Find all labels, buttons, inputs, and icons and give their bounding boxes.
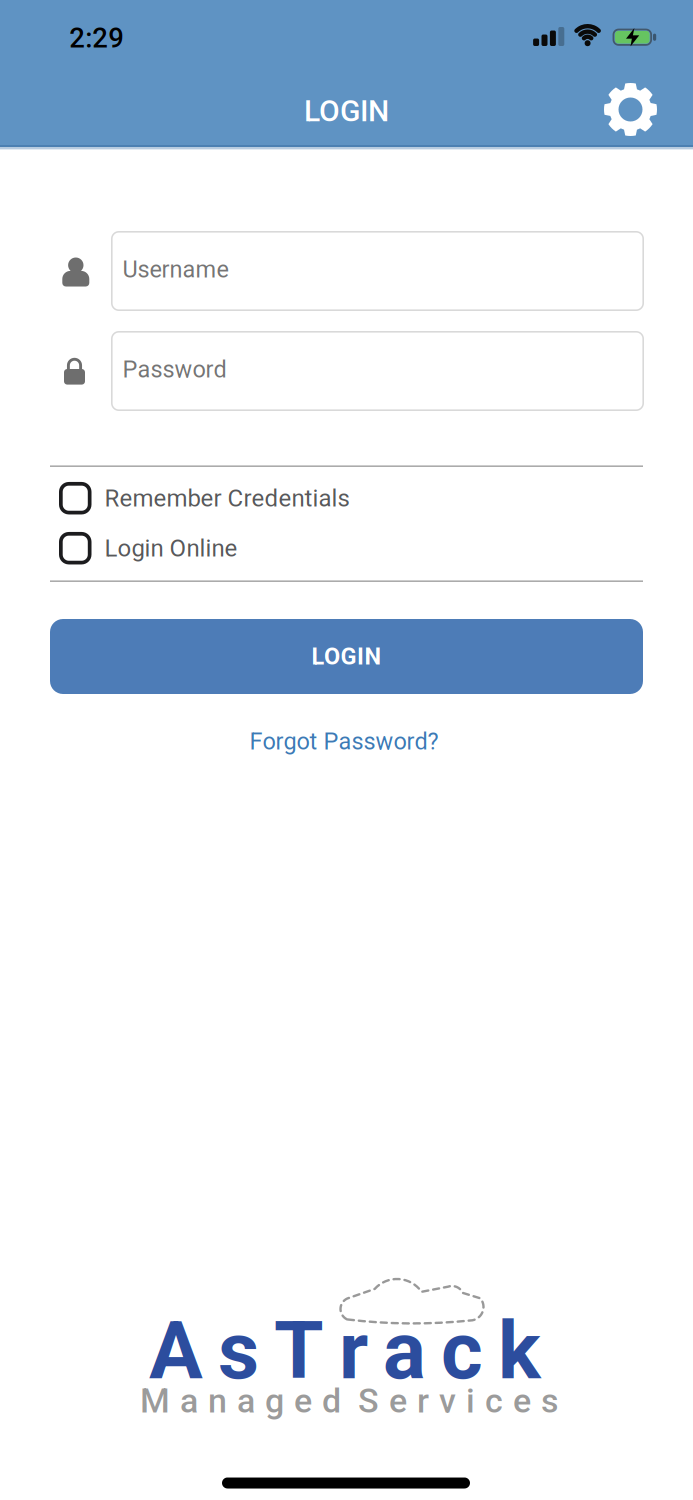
staticText: Remember Credentials [104, 484, 349, 512]
staticText: e [389, 1381, 407, 1421]
staticText: a [180, 1381, 198, 1421]
staticText: a [383, 1304, 426, 1398]
staticText: M [140, 1381, 170, 1421]
staticText: d [322, 1381, 341, 1421]
staticText: Username [122, 256, 228, 283]
staticText: e [513, 1381, 531, 1421]
button[interactable]: Username [111, 231, 644, 311]
staticText: Password [122, 356, 226, 383]
button[interactable]: Login Online [59, 526, 509, 570]
staticText: c [485, 1381, 503, 1421]
staticText: e [294, 1381, 312, 1421]
staticText: LOGIN [311, 643, 381, 670]
staticText: s [541, 1381, 558, 1421]
staticText: Login Online [104, 534, 237, 562]
button[interactable]: LOGIN [50, 619, 643, 694]
staticText: r [417, 1381, 429, 1421]
staticText: S [358, 1381, 379, 1421]
staticText: g [265, 1381, 284, 1421]
staticText: 2:29 [69, 22, 124, 54]
staticText: c [441, 1304, 483, 1398]
staticText: k [498, 1304, 541, 1398]
staticText: s [218, 1304, 259, 1398]
staticText: i [466, 1381, 475, 1421]
staticText: T [274, 1304, 324, 1398]
staticText: n [208, 1381, 227, 1421]
staticText: r [339, 1304, 368, 1398]
button[interactable]: Password [111, 331, 644, 411]
staticText: LOGIN [304, 93, 389, 129]
staticText: Forgot Password? [249, 728, 438, 755]
staticText: a [237, 1381, 255, 1421]
button[interactable]: Settings [600, 79, 660, 139]
button[interactable]: Remember Credentials [59, 476, 509, 520]
staticText: A [149, 1304, 203, 1398]
staticText: v [439, 1381, 456, 1421]
button[interactable]: Forgot Password? [249, 728, 438, 755]
